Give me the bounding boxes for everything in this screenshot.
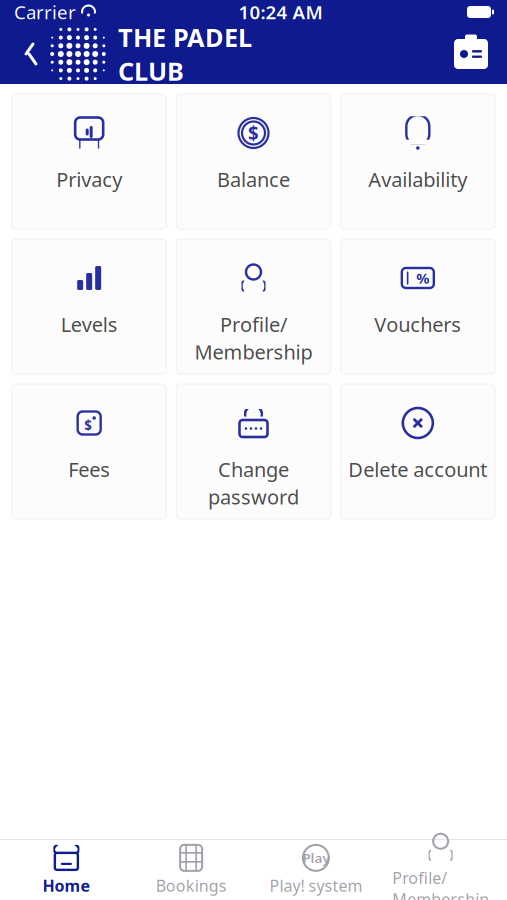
staticText: $ — [84, 416, 92, 434]
staticText: password — [208, 484, 299, 510]
staticText: Fees — [68, 456, 110, 483]
button[interactable]: % — [341, 239, 495, 374]
staticText: Balance — [217, 166, 290, 193]
staticText: Profile/ — [220, 311, 287, 338]
button[interactable]: Privacy — [12, 94, 166, 229]
staticText: % — [416, 268, 429, 288]
staticText: Privacy — [56, 166, 122, 193]
staticText: Availability — [368, 166, 467, 193]
staticText: Home — [42, 875, 90, 896]
staticText: Play — [302, 849, 329, 867]
staticText: Change — [218, 456, 289, 483]
button[interactable]: Profile/Membership — [378, 824, 503, 900]
staticText: Bookings — [156, 875, 227, 896]
button[interactable]: Levels — [12, 239, 166, 374]
button[interactable]: Profile/ — [176, 239, 331, 374]
staticText: Levels — [61, 311, 118, 338]
staticText: Delete account — [348, 456, 487, 483]
button[interactable]: Play — [253, 838, 378, 900]
staticText: $ — [248, 121, 259, 145]
staticText: Play! system — [269, 875, 362, 896]
button[interactable]: $ — [12, 384, 166, 519]
button[interactable]: Back — [14, 34, 48, 74]
staticText: 10:24 AM — [238, 0, 322, 24]
staticText: Membership — [194, 339, 312, 365]
staticText: Vouchers — [374, 311, 461, 338]
button[interactable]: Change — [176, 384, 331, 519]
button[interactable]: Delete account — [341, 384, 495, 519]
staticText: THE PADEL CLUB — [118, 20, 252, 88]
staticText: Carrier — [14, 0, 76, 24]
button[interactable]: Home — [4, 838, 129, 900]
button[interactable]: Bookings — [129, 838, 254, 900]
staticText: Profile/Membership — [392, 867, 489, 900]
button[interactable]: Availability — [341, 94, 495, 229]
button[interactable]: $ — [176, 94, 331, 229]
button[interactable]: Membership card — [449, 32, 493, 76]
